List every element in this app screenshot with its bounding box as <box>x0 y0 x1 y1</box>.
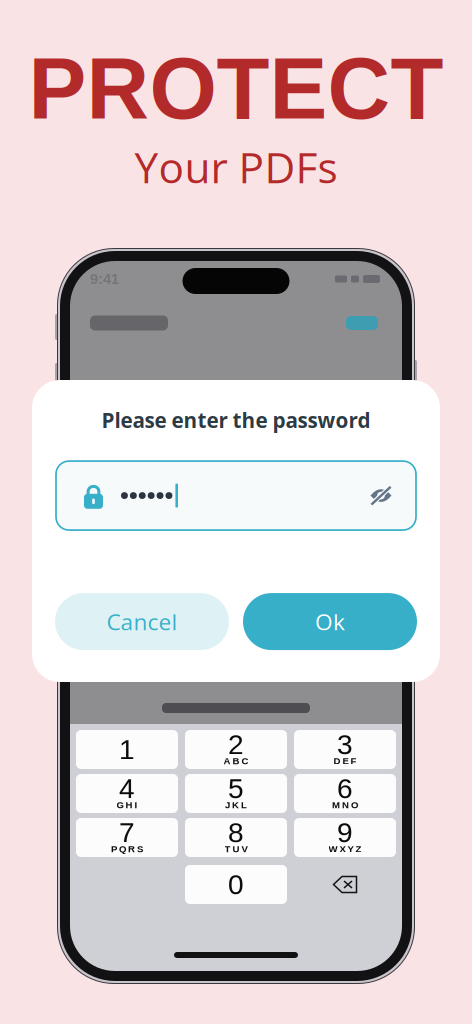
button[interactable]: 3 <box>294 730 396 769</box>
button[interactable]: Delete <box>294 865 396 904</box>
button[interactable]: 6 <box>294 774 396 813</box>
staticText: 7 <box>119 817 135 848</box>
button[interactable]: 0 <box>185 865 287 904</box>
staticText: D E F <box>333 756 356 766</box>
staticText: G H I <box>116 800 137 810</box>
staticText: T U V <box>224 844 247 854</box>
button[interactable]: 9 <box>294 818 396 857</box>
staticText: 9:41 <box>90 271 119 287</box>
staticText: W X Y Z <box>328 844 361 854</box>
button[interactable]: 7 <box>76 818 178 857</box>
staticText: 3 <box>337 729 353 760</box>
button[interactable]: Cancel <box>55 593 229 650</box>
staticText: 2 <box>228 729 244 760</box>
staticText: 4 <box>119 773 135 804</box>
button[interactable]: 8 <box>185 818 287 857</box>
staticText: Ok <box>315 606 345 637</box>
staticText: J K L <box>225 800 247 810</box>
staticText: 1 <box>119 734 135 765</box>
staticText: 5 <box>228 773 244 804</box>
staticText: 6 <box>337 773 353 804</box>
staticText: Your PDFs <box>134 138 337 195</box>
staticText: 9 <box>337 817 353 848</box>
button[interactable]: Ok <box>243 593 417 650</box>
staticText: PROTECT <box>28 40 443 137</box>
button[interactable]: 5 <box>185 774 287 813</box>
staticText: A B C <box>223 756 248 766</box>
staticText: Please enter the password <box>101 406 370 434</box>
staticText: M N O <box>332 800 358 810</box>
staticText: 8 <box>228 817 244 848</box>
staticText: 0 <box>228 869 244 900</box>
button[interactable]: 4 <box>76 774 178 813</box>
staticText: Cancel <box>106 606 177 637</box>
button[interactable]: 2 <box>185 730 287 769</box>
staticText: P Q R S <box>111 844 143 854</box>
button[interactable]: 1 <box>76 730 178 769</box>
